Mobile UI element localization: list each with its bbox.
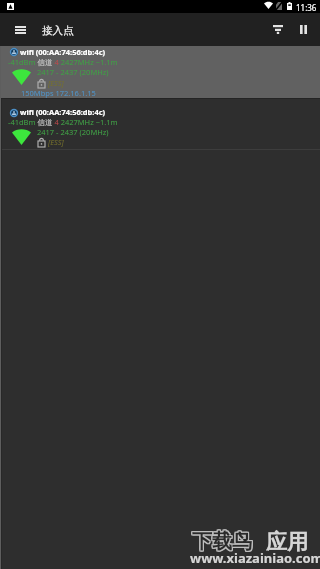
staticText: 2417 - 2437 (20MHz) [37, 127, 109, 137]
staticText: 下载鸟 [193, 529, 253, 554]
button[interactable]: wifi (00:AA:74:56:db:4c) [0, 99, 320, 149]
staticText: www.xiazainiao.com [190, 549, 320, 567]
staticText: 下载鸟 [191, 529, 251, 554]
staticText: 接入点 [42, 24, 74, 37]
staticText: 下载鸟 [191, 530, 251, 555]
staticText: -41dBm 信道 4 2427MHz ~1.1m [8, 57, 118, 67]
staticText: 下载鸟 [192, 528, 252, 553]
button[interactable]: Navigation menu [6, 13, 34, 46]
staticText: 下载鸟 [193, 530, 253, 555]
button[interactable]: Filter [264, 13, 291, 46]
staticText: [ESS] [48, 137, 64, 147]
staticText: 2417 - 2437 (20MHz) [37, 67, 109, 77]
staticText: 下载鸟 [193, 528, 253, 553]
staticText: 下载鸟 [192, 529, 252, 554]
staticText: wifi (00:AA:74:56:db:4c) [20, 107, 106, 117]
staticText: 应用 [266, 529, 308, 555]
button[interactable]: Pause scanning [290, 13, 316, 46]
staticText: 150Mbps 172.16.1.15 [21, 88, 96, 98]
staticText: 11:36 [296, 2, 317, 13]
staticText: [ESS] [48, 78, 64, 88]
staticText: wifi (00:AA:74:56:db:4c) [20, 47, 106, 57]
button[interactable]: wifi (00:AA:74:56:db:4c) [0, 46, 320, 98]
staticText: 下载鸟 [192, 530, 252, 555]
staticText: 下载鸟 [191, 528, 251, 553]
staticText: -41dBm 信道 4 2427MHz ~1.1m [8, 117, 118, 127]
